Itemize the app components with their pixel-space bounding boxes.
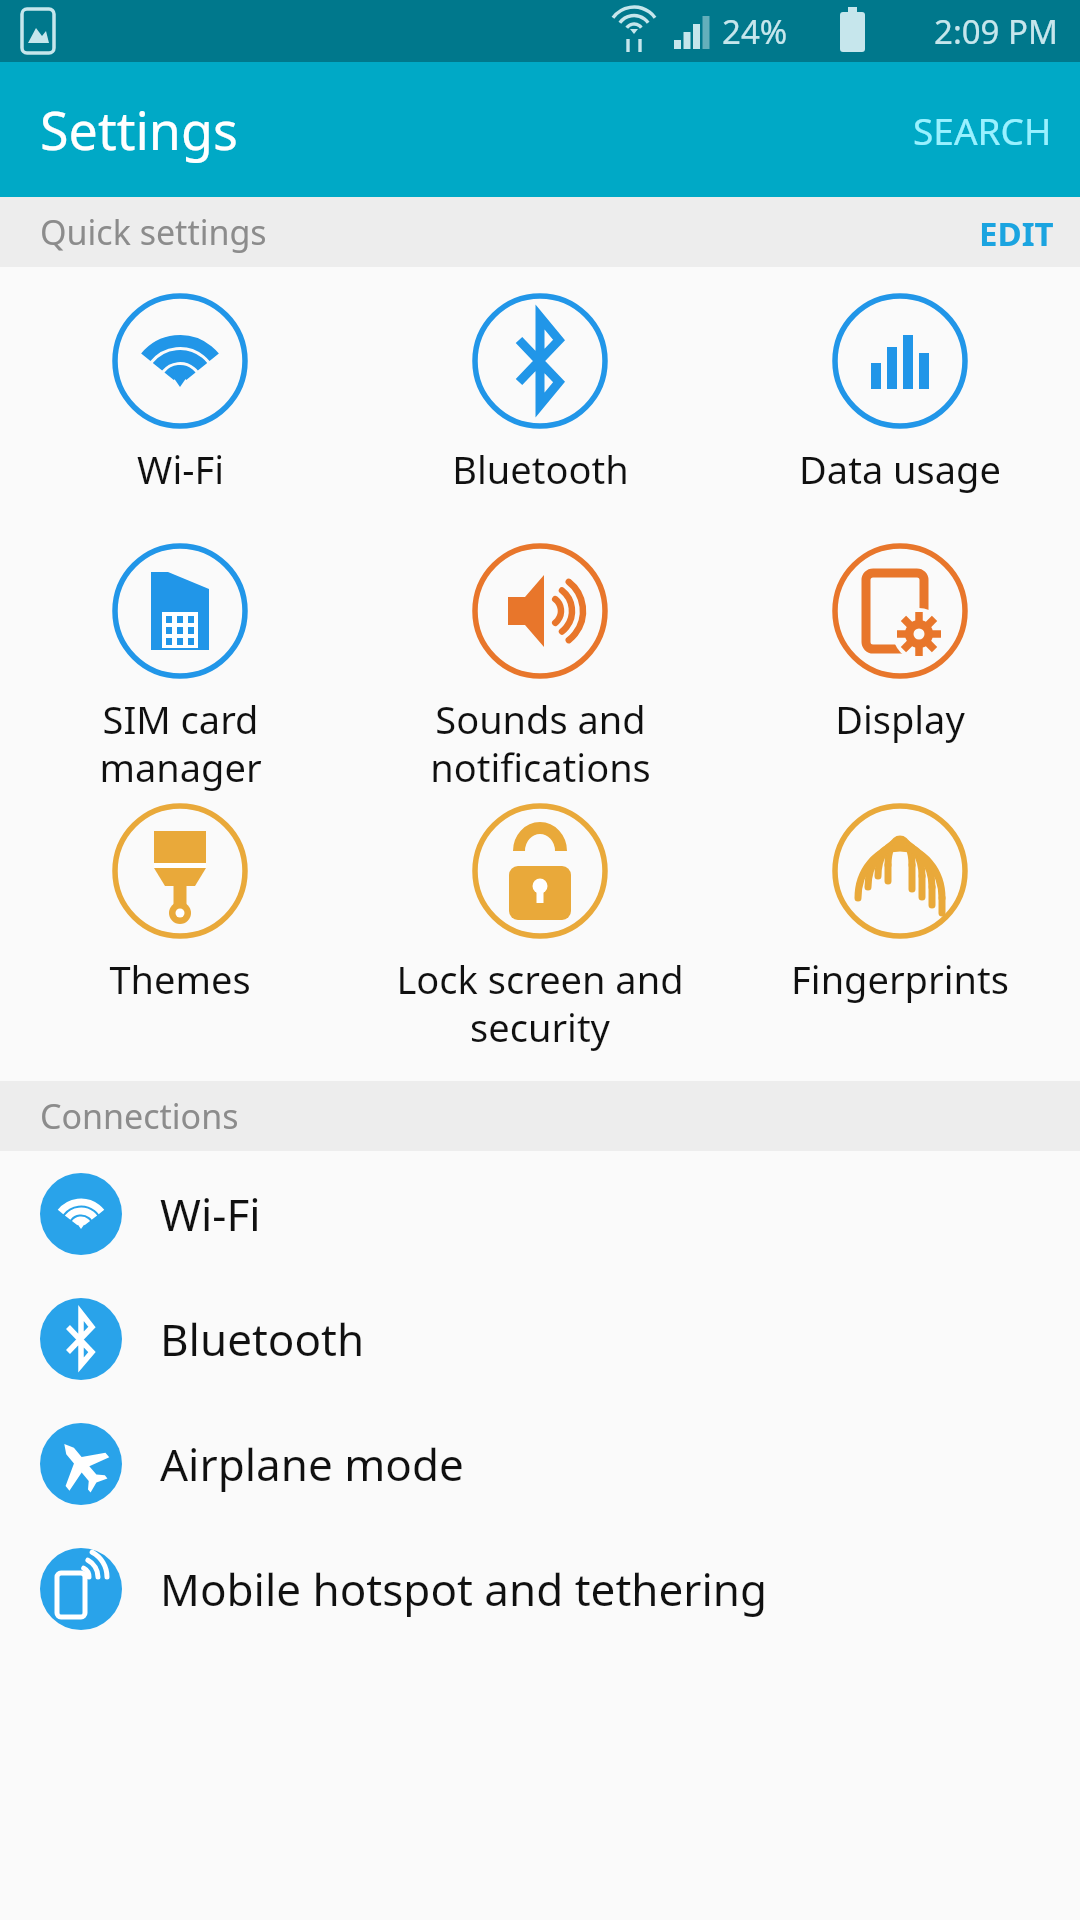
button[interactable]: Airplane mode (0, 1401, 1080, 1526)
staticText: Bluetooth (452, 443, 629, 495)
staticText: Wi-Fi (160, 1184, 261, 1244)
staticText: Themes (109, 953, 251, 1005)
staticText: Wi-Fi (137, 443, 224, 495)
button[interactable]: Wi-Fi (0, 1151, 1080, 1276)
staticText: 2:09 PM (934, 9, 1058, 54)
button[interactable]: EDIT (953, 197, 1080, 267)
button[interactable]: SEARCH (885, 79, 1080, 181)
staticText: Connections (40, 1093, 239, 1139)
button[interactable]: Themes (0, 803, 360, 1057)
staticText: Airplane mode (160, 1434, 464, 1494)
button[interactable]: Data usage (720, 293, 1080, 499)
button[interactable]: SIM card manager (0, 543, 360, 797)
staticText: Lock screen and security (396, 953, 684, 1053)
button[interactable]: Wi-Fi (0, 293, 360, 499)
staticText: SIM card manager (99, 693, 262, 793)
staticText: Data usage (799, 443, 1001, 495)
button[interactable]: Sounds and notifications (360, 543, 720, 797)
button[interactable]: Mobile hotspot and tethering (0, 1526, 1080, 1651)
button[interactable]: Display (720, 543, 1080, 797)
staticText: Bluetooth (160, 1309, 365, 1369)
button[interactable]: Lock screen and security (360, 803, 720, 1057)
staticText: Quick settings (40, 209, 267, 255)
button[interactable]: Bluetooth (0, 1276, 1080, 1401)
staticText: Sounds and notifications (430, 693, 651, 793)
staticText: EDIT (979, 211, 1054, 253)
staticText: 24% (722, 9, 788, 54)
staticText: Settings (40, 94, 238, 165)
staticText: Mobile hotspot and tethering (160, 1559, 768, 1619)
staticText: SEARCH (913, 105, 1052, 155)
staticText: Display (835, 693, 965, 745)
button[interactable]: Fingerprints (720, 803, 1080, 1057)
staticText: Fingerprints (791, 953, 1009, 1005)
button[interactable]: Bluetooth (360, 293, 720, 499)
